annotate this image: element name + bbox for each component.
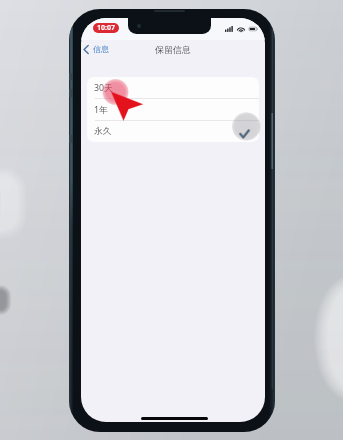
button[interactable]: 1年	[87, 99, 259, 120]
button[interactable]: 永久	[87, 121, 259, 142]
staticText: 保留信息	[155, 44, 191, 55]
staticText: 1年	[94, 104, 108, 116]
button[interactable]: 信息	[82, 43, 110, 55]
staticText: 30天	[94, 82, 113, 94]
staticText: 信息	[93, 44, 109, 54]
staticText: 10:07	[97, 23, 115, 33]
staticText: 永久	[94, 126, 112, 137]
button[interactable]: 30天	[87, 77, 259, 98]
